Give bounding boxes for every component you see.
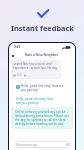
staticText: Online ordering and delivery can be limi… (15, 110, 70, 126)
staticText: Instant feedback (11, 23, 74, 33)
staticText: united Nov has a quick one? Experience c… (13, 62, 59, 70)
button[interactable]: Close (10, 53, 15, 58)
staticText: 9:41 (17, 73, 23, 77)
staticText: Hello, good morning! How are you getting… (21, 84, 66, 92)
staticText: 9:41 (14, 45, 21, 49)
button[interactable]: Send a message (13, 141, 71, 148)
staticText: Send a message (16, 143, 38, 147)
staticText: Hello, good morning! How are you getting… (16, 97, 55, 105)
staticText: Rate a New Neighbor (25, 53, 59, 57)
